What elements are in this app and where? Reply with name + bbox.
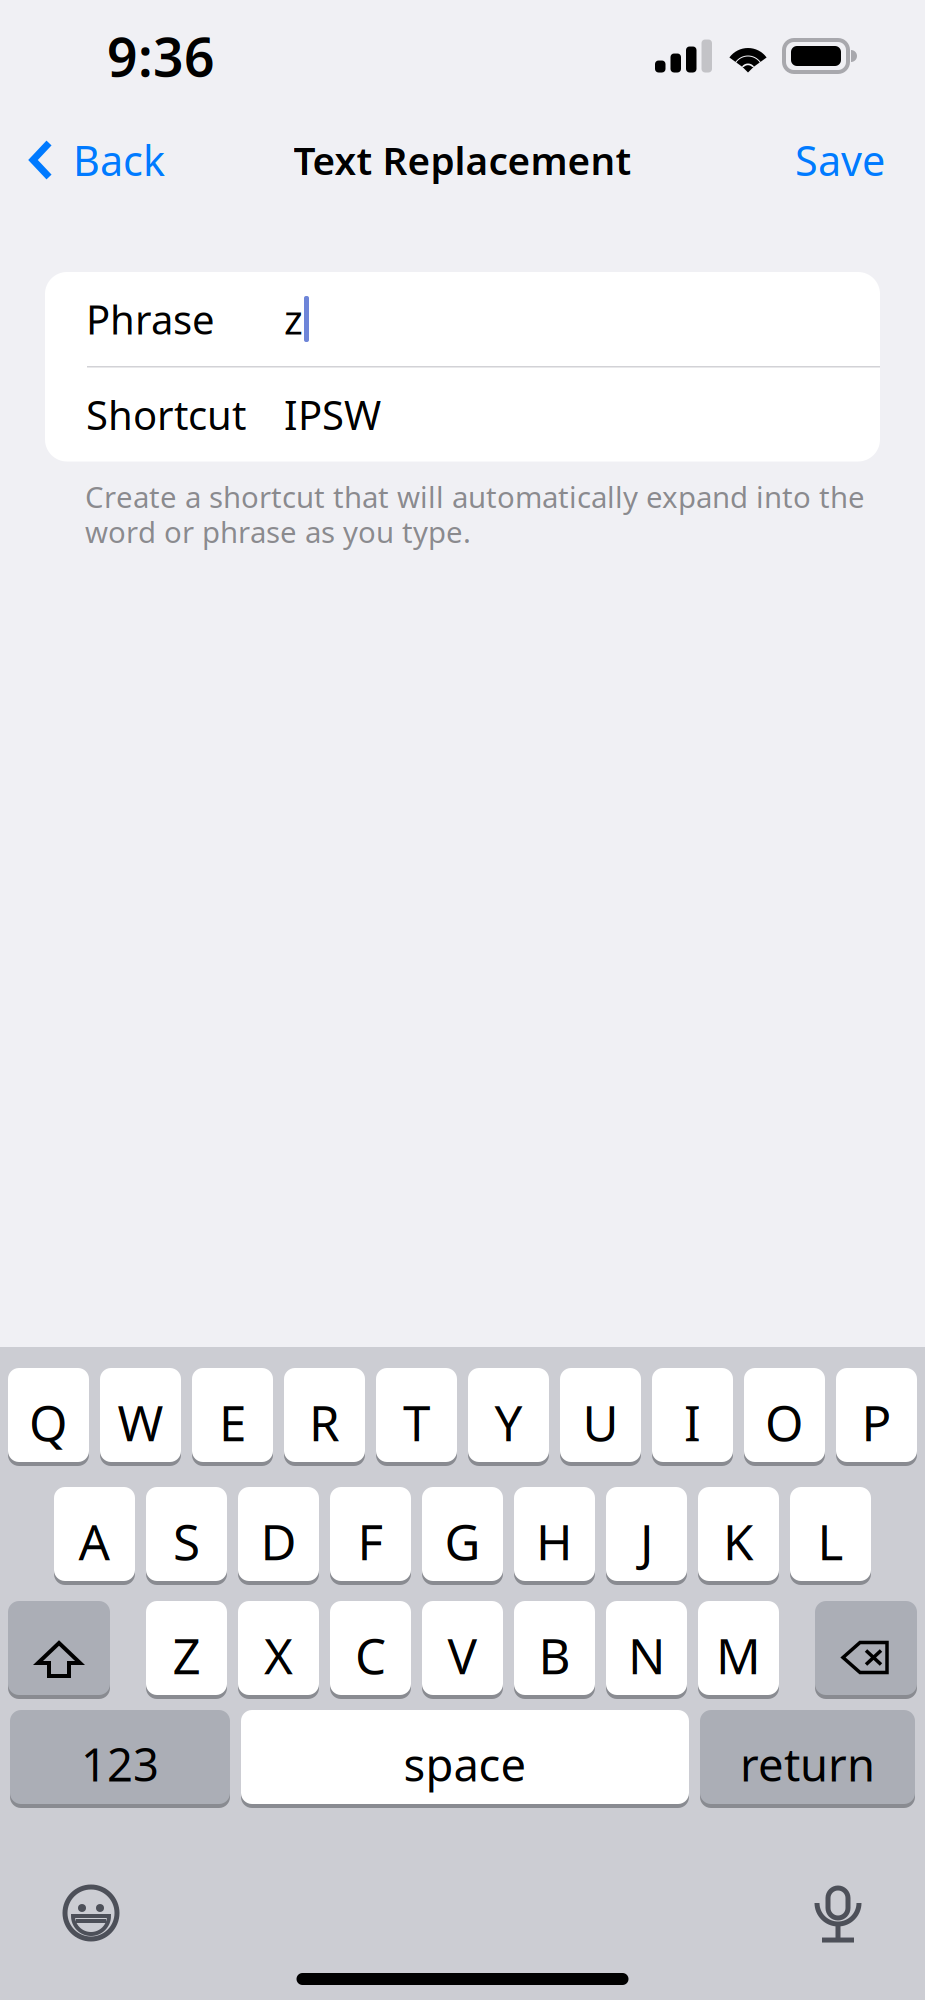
staticText: B <box>538 1622 570 1688</box>
button[interactable]: B <box>514 1601 595 1699</box>
button[interactable]: 123 <box>10 1710 230 1808</box>
button[interactable]: return <box>700 1710 915 1808</box>
button[interactable]: E <box>192 1368 273 1466</box>
staticText: K <box>723 1508 754 1574</box>
button[interactable]: G <box>422 1487 503 1585</box>
button[interactable]: P <box>836 1368 917 1466</box>
button[interactable]: R <box>284 1368 365 1466</box>
staticText: X <box>264 1622 293 1688</box>
button[interactable]: Save <box>765 119 925 201</box>
staticText: Shortcut <box>86 388 246 441</box>
staticText: R <box>309 1389 340 1455</box>
button[interactable]: V <box>422 1601 503 1699</box>
staticText: E <box>219 1389 246 1455</box>
staticText: word or phrase as you type. <box>85 512 471 551</box>
button[interactable]: Y <box>468 1368 549 1466</box>
staticText: 123 <box>81 1734 159 1794</box>
button[interactable]: M <box>698 1601 779 1699</box>
staticText: P <box>861 1389 891 1455</box>
button[interactable]: Q <box>8 1368 89 1466</box>
staticText: Save <box>795 133 885 187</box>
button[interactable]: Z <box>146 1601 227 1699</box>
button[interactable]: C <box>330 1601 411 1699</box>
button[interactable]: T <box>376 1368 457 1466</box>
staticText: 9:36 <box>107 21 215 91</box>
staticText: Create a shortcut that will automaticall… <box>85 477 865 516</box>
button[interactable]: X <box>238 1601 319 1699</box>
staticText: U <box>582 1389 618 1455</box>
button[interactable]: U <box>560 1368 641 1466</box>
staticText: Y <box>494 1389 522 1455</box>
button[interactable]: J <box>606 1487 687 1585</box>
staticText: z <box>284 292 303 345</box>
staticText: J <box>640 1508 653 1574</box>
button[interactable]: S <box>146 1487 227 1585</box>
staticText: F <box>357 1508 383 1574</box>
button[interactable]: N <box>606 1601 687 1699</box>
button[interactable]: O <box>744 1368 825 1466</box>
staticText: I <box>684 1389 701 1455</box>
staticText: O <box>765 1389 804 1455</box>
staticText: Back <box>73 133 165 187</box>
button[interactable]: H <box>514 1487 595 1585</box>
button[interactable]: A <box>54 1487 135 1585</box>
staticText: W <box>117 1389 163 1455</box>
button[interactable]: space <box>241 1710 689 1808</box>
staticText: return <box>740 1734 875 1794</box>
staticText: space <box>403 1734 526 1794</box>
staticText: D <box>260 1508 296 1574</box>
button[interactable]: Shift <box>8 1601 110 1699</box>
button[interactable]: I <box>652 1368 733 1466</box>
button[interactable]: W <box>100 1368 181 1466</box>
button[interactable]: L <box>790 1487 871 1585</box>
staticText: C <box>355 1622 386 1688</box>
staticText: IPSW <box>284 388 381 441</box>
staticText: A <box>78 1508 110 1574</box>
button[interactable]: F <box>330 1487 411 1585</box>
button[interactable]: Emoji keyboard <box>46 1870 136 1956</box>
staticText: M <box>716 1622 761 1688</box>
staticText: V <box>447 1622 477 1688</box>
staticText: G <box>444 1508 480 1574</box>
staticText: S <box>173 1508 200 1574</box>
staticText: T <box>403 1389 430 1455</box>
staticText: Phrase <box>86 292 215 345</box>
button[interactable]: Dictation <box>797 1869 879 1957</box>
button[interactable]: K <box>698 1487 779 1585</box>
staticText: Text Replacement <box>293 134 631 186</box>
button[interactable]: Delete <box>815 1601 917 1699</box>
staticText: L <box>817 1508 843 1574</box>
button[interactable]: D <box>238 1487 319 1585</box>
button[interactable]: Back <box>0 119 187 201</box>
staticText: Q <box>29 1389 68 1455</box>
staticText: N <box>628 1622 665 1688</box>
staticText: Z <box>172 1622 200 1688</box>
staticText: H <box>536 1508 573 1574</box>
